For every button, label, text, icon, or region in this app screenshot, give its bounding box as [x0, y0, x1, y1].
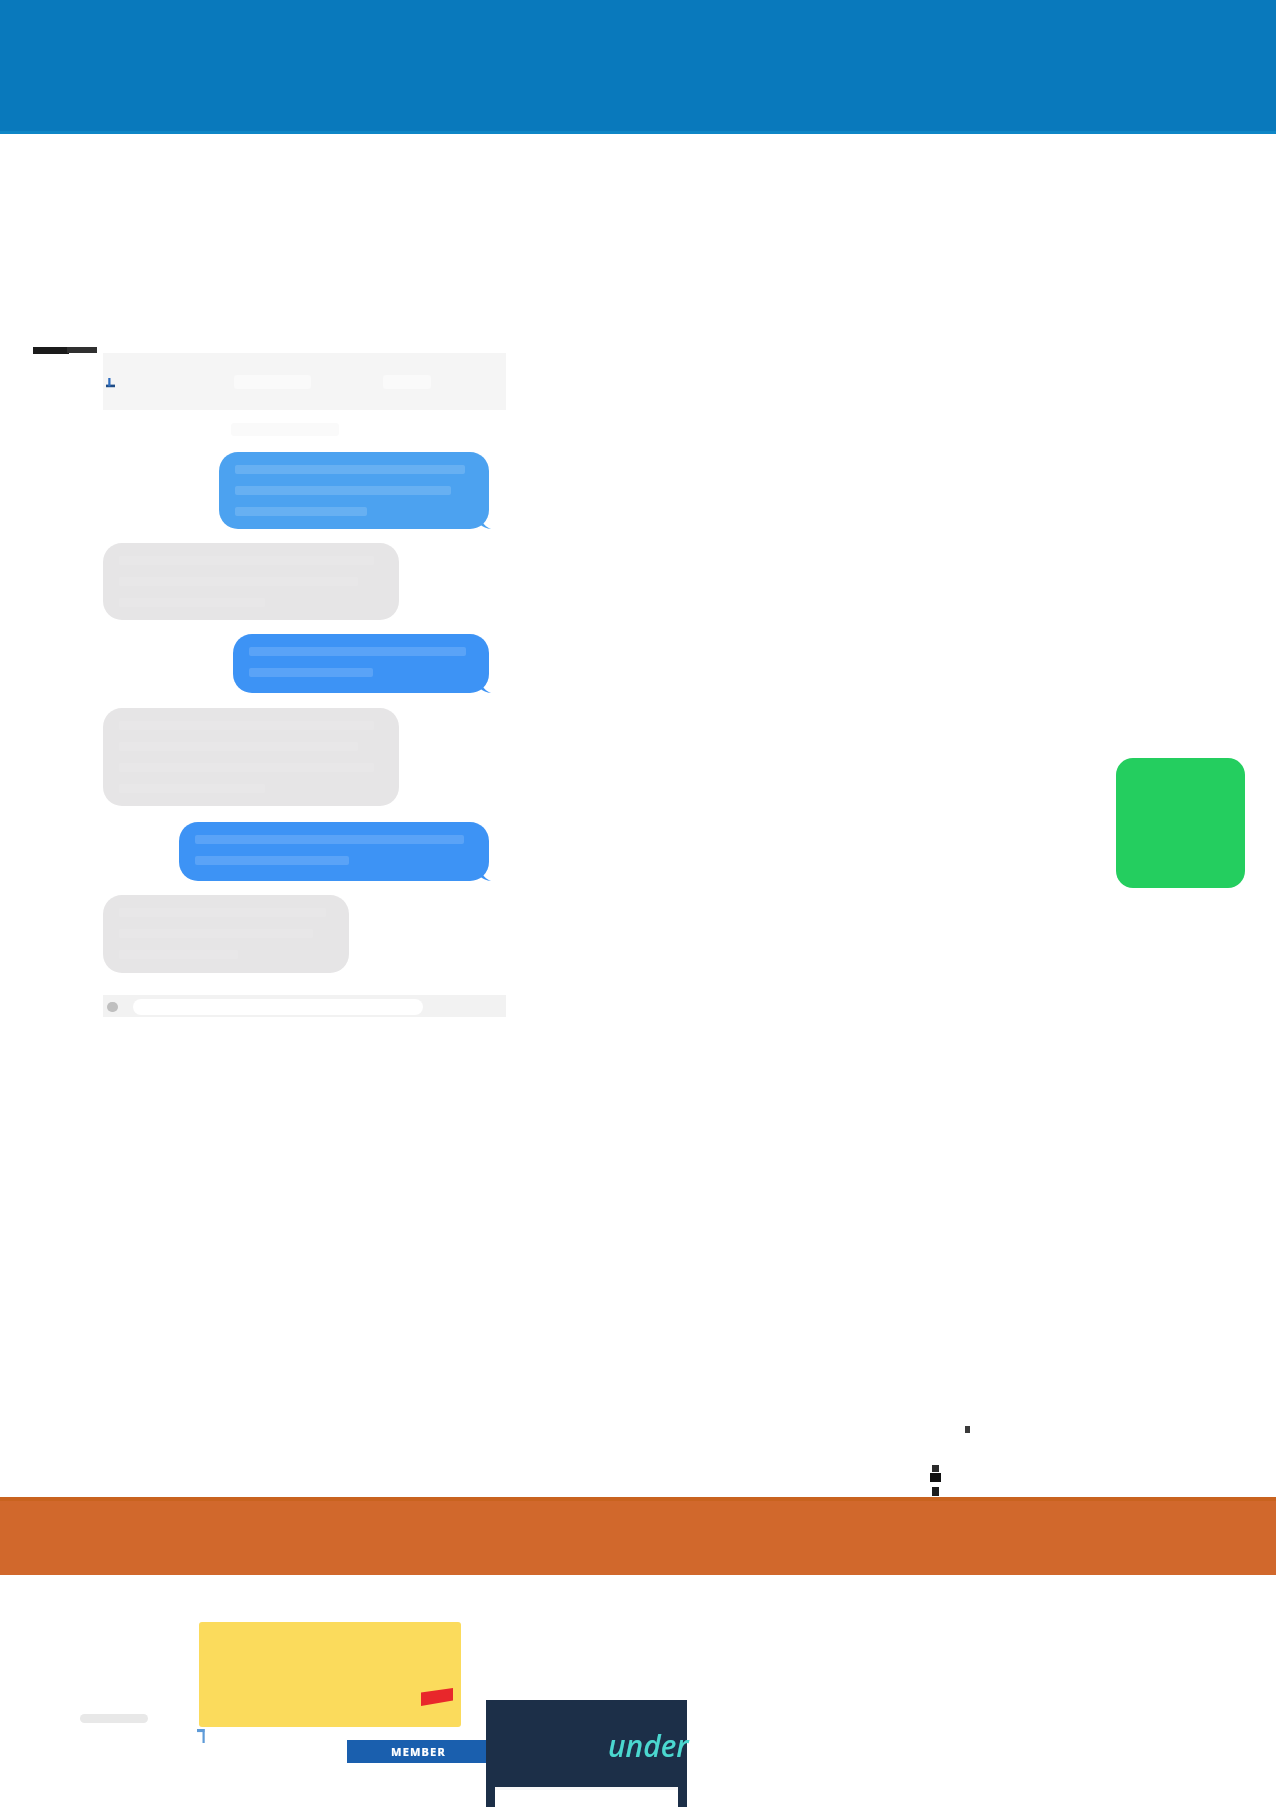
- button[interactable]: Green app tile: [1116, 758, 1245, 888]
- button[interactable]: [103, 543, 399, 620]
- button[interactable]: Conversation header: [103, 353, 506, 410]
- staticText: MEMBER: [391, 1744, 446, 1759]
- button[interactable]: MEMBER: [347, 1740, 489, 1763]
- button[interactable]: [233, 634, 489, 693]
- button[interactable]: Brand card: [486, 1697, 687, 1807]
- button[interactable]: [103, 895, 349, 973]
- staticText: under: [608, 1725, 689, 1766]
- other: Camera: [107, 1002, 118, 1012]
- button[interactable]: Yellow highlight block: [199, 1622, 461, 1727]
- other: Back: [106, 378, 115, 390]
- button[interactable]: [179, 822, 489, 881]
- button[interactable]: [219, 452, 489, 529]
- button[interactable]: Message input bar: [103, 995, 506, 1017]
